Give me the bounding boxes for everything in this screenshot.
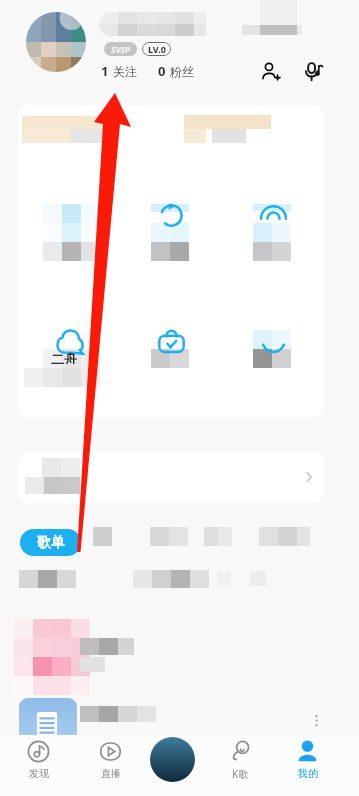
button[interactable]: Service 3 xyxy=(222,155,324,281)
button[interactable]: More options xyxy=(307,711,325,729)
button[interactable]: 0 xyxy=(158,62,194,80)
staticText: LV.0 xyxy=(148,43,166,55)
staticText: 0 xyxy=(158,62,166,80)
staticText: 我的 xyxy=(298,767,318,780)
staticText: 1 xyxy=(101,62,109,80)
staticText: 直播 xyxy=(101,767,121,780)
button[interactable] xyxy=(204,527,232,546)
button[interactable]: Service 2 xyxy=(120,155,222,281)
button[interactable] xyxy=(99,12,206,36)
button[interactable]: Voice search xyxy=(300,58,327,85)
button[interactable]: 我的 xyxy=(278,735,336,790)
button[interactable]: 直播 xyxy=(81,735,139,790)
button[interactable] xyxy=(18,452,324,503)
staticText: 二舟 xyxy=(51,351,77,364)
button[interactable] xyxy=(150,527,188,546)
button[interactable]: Service 6 xyxy=(222,281,324,407)
staticText: 发现 xyxy=(29,767,49,780)
staticText: 粉丝 xyxy=(170,64,194,79)
button[interactable] xyxy=(18,105,324,155)
button[interactable]: Now playing xyxy=(150,737,195,782)
button[interactable] xyxy=(236,0,302,38)
button[interactable]: LV.0 xyxy=(142,42,171,56)
button[interactable]: Service 5 xyxy=(120,281,222,407)
staticText: 关注 xyxy=(113,64,137,79)
button[interactable]: 发现 xyxy=(9,735,67,790)
button[interactable]: Playlist 1 xyxy=(0,610,359,694)
button[interactable]: Service 4 xyxy=(18,281,120,407)
button[interactable]: Playlist 2 xyxy=(0,694,359,736)
button[interactable]: 1 xyxy=(101,62,137,80)
staticText: K歌 xyxy=(232,767,249,781)
button[interactable]: Add friend xyxy=(257,58,284,85)
staticText: 歌单 xyxy=(37,534,65,552)
button[interactable]: 歌单 xyxy=(20,529,81,556)
button[interactable]: Service 1 xyxy=(18,155,120,281)
button[interactable]: Profile avatar xyxy=(26,12,86,72)
staticText: SVIP xyxy=(111,43,131,55)
button[interactable]: K歌 xyxy=(211,735,269,790)
button[interactable] xyxy=(259,527,310,546)
button[interactable]: SVIP xyxy=(104,42,137,56)
